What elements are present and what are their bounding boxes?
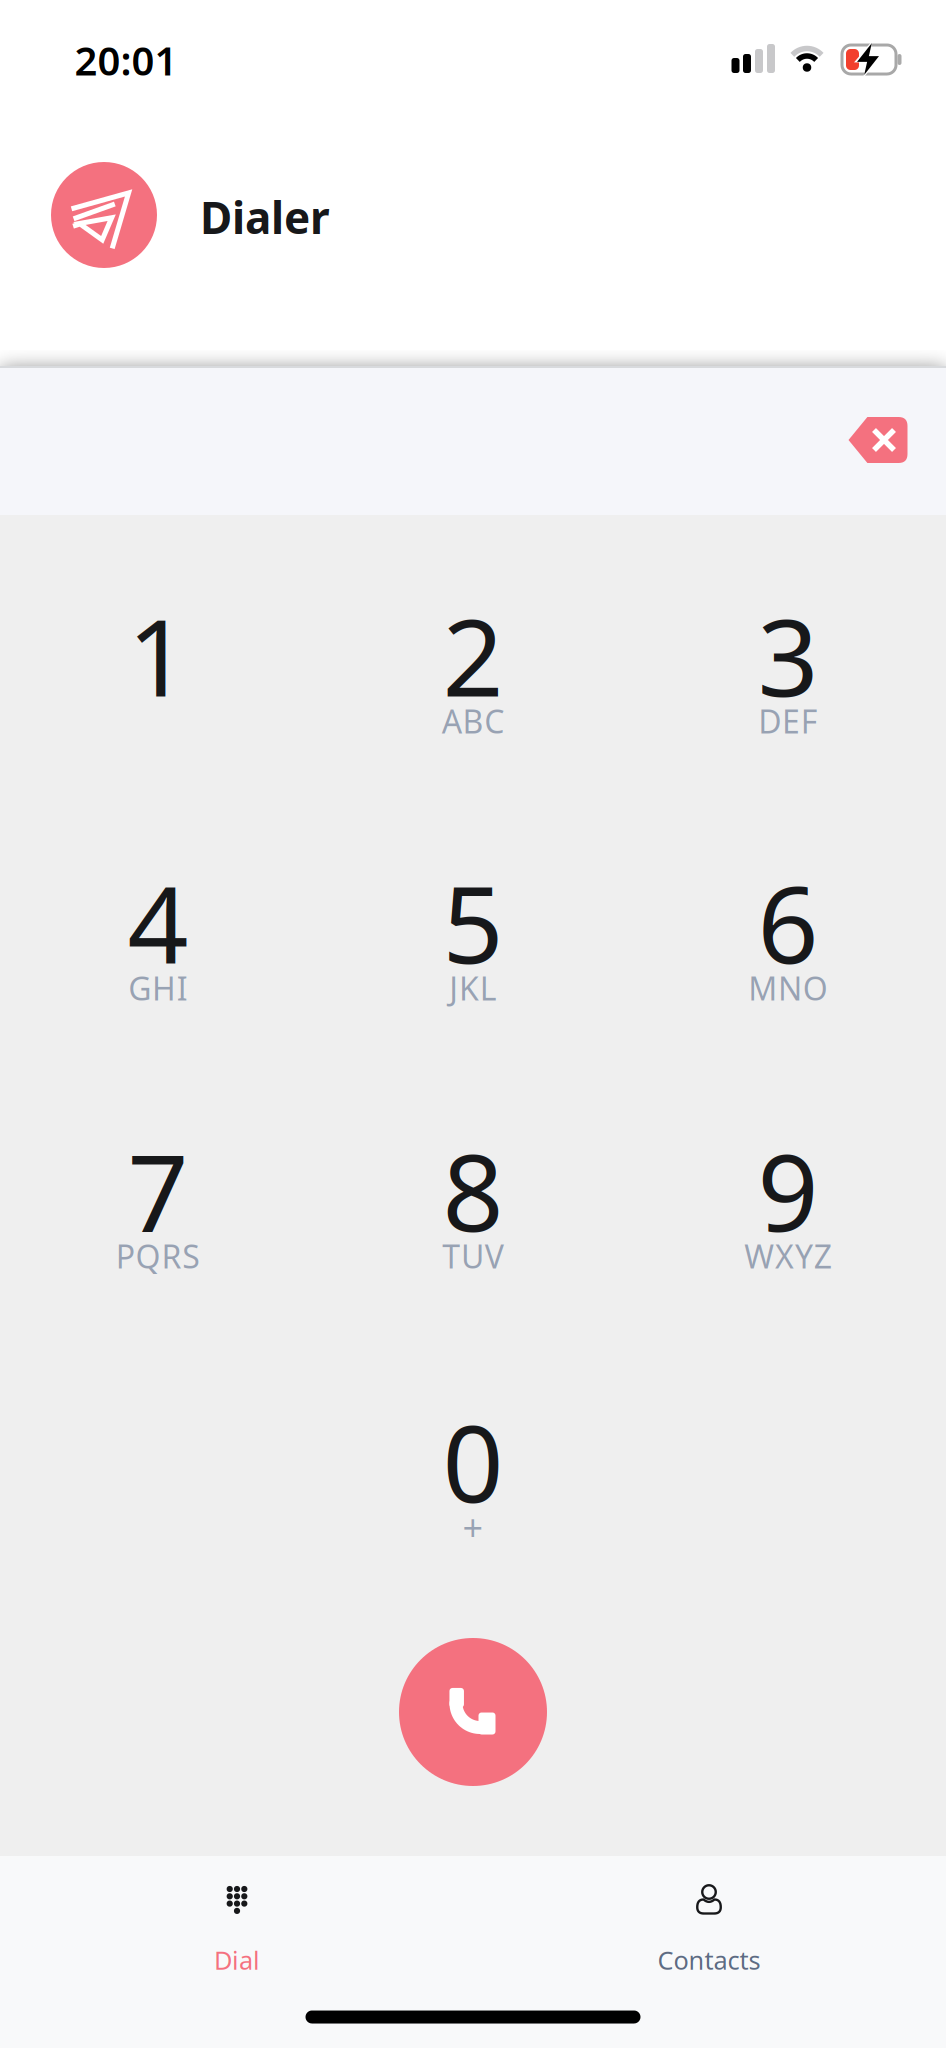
button[interactable]: Contacts [639,1870,779,1980]
button[interactable]: 4 [38,877,278,1017]
button[interactable]: 8 [353,1145,593,1285]
staticText: WXYZ [744,1235,832,1277]
staticText: Contacts [657,1943,760,1977]
button[interactable]: 2 [353,610,593,750]
staticText: + [462,1503,483,1551]
staticText: 9 [757,1119,818,1261]
button[interactable]: 9 [668,1145,908,1285]
staticText: TUV [442,1235,504,1277]
staticText: 8 [442,1119,503,1261]
staticText: GHI [128,967,188,1009]
staticText: PQRS [116,1235,200,1277]
staticText: JKL [449,967,497,1009]
staticText: 0 [442,1390,503,1532]
staticText: Dial [214,1943,260,1977]
staticText: DEF [758,700,818,742]
button[interactable]: Dial [167,1870,307,1980]
button[interactable]: 3 [668,610,908,750]
button[interactable]: 0 [353,1416,593,1556]
button[interactable]: 1 [38,610,278,750]
staticText: 5 [442,851,503,993]
staticText: 4 [127,851,188,993]
button[interactable]: 5 [353,877,593,1017]
staticText: 20:01 [74,33,177,86]
staticText: 6 [757,851,818,993]
button[interactable]: 7 [38,1145,278,1285]
staticText: ABC [442,700,504,742]
staticText: MNO [748,967,828,1009]
staticText: 3 [757,584,818,726]
staticText: Dialer [200,188,330,246]
button[interactable]: Delete [843,410,913,470]
staticText: 1 [127,584,188,726]
button[interactable]: Call [399,1638,547,1786]
staticText: 7 [127,1119,188,1261]
staticText: 2 [442,584,503,726]
button[interactable]: 6 [668,877,908,1017]
